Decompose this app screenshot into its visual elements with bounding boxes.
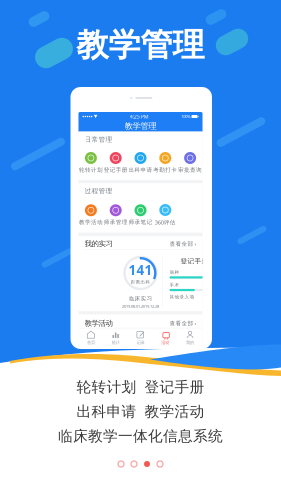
staticText: 活动 bbox=[161, 340, 169, 345]
staticText: 登记手册 bbox=[180, 257, 208, 265]
staticText: 记录 bbox=[136, 340, 144, 345]
staticText: 教学活动 bbox=[79, 219, 103, 226]
button[interactable]: 记录 bbox=[128, 329, 153, 347]
staticText: 我的实习 bbox=[84, 239, 112, 248]
staticText: 教学活动 bbox=[84, 318, 112, 328]
staticText: 其他录入项 bbox=[169, 294, 194, 300]
staticText: 过程管理 bbox=[84, 187, 112, 195]
staticText: 考勤打卡 bbox=[153, 166, 177, 173]
staticText: 师承管理 bbox=[104, 219, 128, 226]
staticText: 出科申请 bbox=[128, 166, 152, 173]
staticText: 师承笔记 bbox=[128, 219, 152, 226]
staticText: 病种 bbox=[169, 269, 179, 275]
staticText: 轮转计划 登记手册 bbox=[76, 378, 204, 396]
button[interactable]: 出科申请 bbox=[128, 152, 153, 173]
staticText: 查看全部 › bbox=[169, 240, 196, 247]
button[interactable]: 考勤打卡 bbox=[153, 152, 178, 173]
button[interactable]: 查看全部 › bbox=[169, 240, 196, 247]
staticText: 首页 bbox=[87, 340, 95, 345]
button[interactable]: 首页 bbox=[78, 329, 103, 347]
staticText: 距离出科 bbox=[130, 279, 150, 285]
staticText: 轮转计划 bbox=[79, 166, 103, 173]
staticText: 临床教学一体化信息系统 bbox=[58, 427, 223, 445]
staticText: 4:25 PM bbox=[130, 113, 149, 120]
staticText: 教学管理 bbox=[76, 25, 204, 65]
button[interactable]: 查看全部 › bbox=[169, 319, 196, 327]
staticText: 临床实习 bbox=[128, 295, 152, 302]
staticText: 我的 bbox=[186, 340, 194, 345]
staticText: 统计 bbox=[112, 340, 120, 345]
button[interactable]: 审批查询 bbox=[178, 152, 202, 173]
button[interactable]: 师承笔记 bbox=[128, 204, 153, 226]
staticText: 手术 bbox=[169, 282, 179, 288]
button[interactable]: 轮转计划 bbox=[78, 152, 103, 173]
button[interactable]: 登记手册 bbox=[103, 152, 128, 173]
staticText: 2019.08.01-2019.12.28 bbox=[122, 304, 159, 309]
staticText: 审批查询 bbox=[178, 166, 202, 173]
button[interactable]: 统计 bbox=[103, 329, 128, 347]
button[interactable]: 师承管理 bbox=[103, 204, 128, 226]
button[interactable]: 活动 bbox=[153, 329, 178, 347]
staticText: 360评估 bbox=[155, 218, 176, 226]
button[interactable]: 我的 bbox=[178, 329, 202, 347]
staticText: 查看全部 › bbox=[169, 319, 196, 327]
staticText: 141 bbox=[128, 261, 152, 279]
staticText: 日常管理 bbox=[84, 135, 112, 144]
staticText: 登记手册 bbox=[104, 166, 128, 173]
staticText: 教学管理 bbox=[124, 121, 156, 131]
staticText: 100% bbox=[181, 114, 190, 119]
button[interactable]: 360评估 bbox=[153, 204, 178, 226]
button[interactable]: 教学活动 bbox=[78, 204, 103, 226]
staticText: 出科申请 教学活动 bbox=[76, 402, 204, 421]
